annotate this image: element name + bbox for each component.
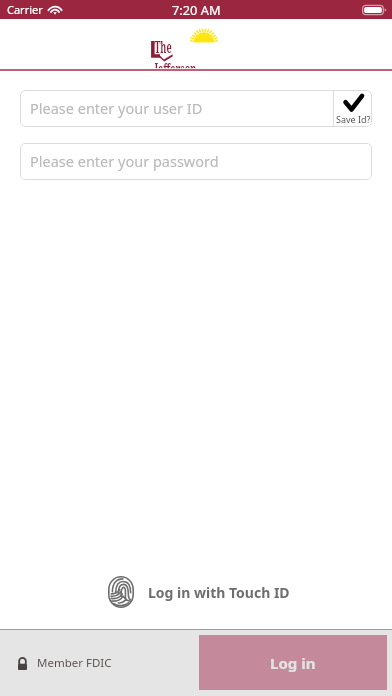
staticText: Member FDIC xyxy=(37,655,112,671)
button[interactable]: Please enter your user ID xyxy=(20,90,333,127)
button[interactable]: Member FDIC xyxy=(18,655,112,671)
button[interactable]: Save Id xyxy=(334,90,372,127)
staticText: Log in with Touch ID xyxy=(148,583,290,602)
staticText: Carrier xyxy=(7,2,43,17)
button[interactable]: Log in with Touch ID xyxy=(3,576,392,608)
button[interactable]: Please enter your password xyxy=(20,143,372,180)
staticText: Please enter your user ID xyxy=(30,98,203,118)
staticText: Please enter your password xyxy=(30,151,219,171)
staticText: 7:20 AM xyxy=(172,1,221,18)
staticText: Log in xyxy=(270,653,316,673)
button[interactable]: Log in xyxy=(199,635,387,690)
staticText: Save Id? xyxy=(336,113,371,125)
